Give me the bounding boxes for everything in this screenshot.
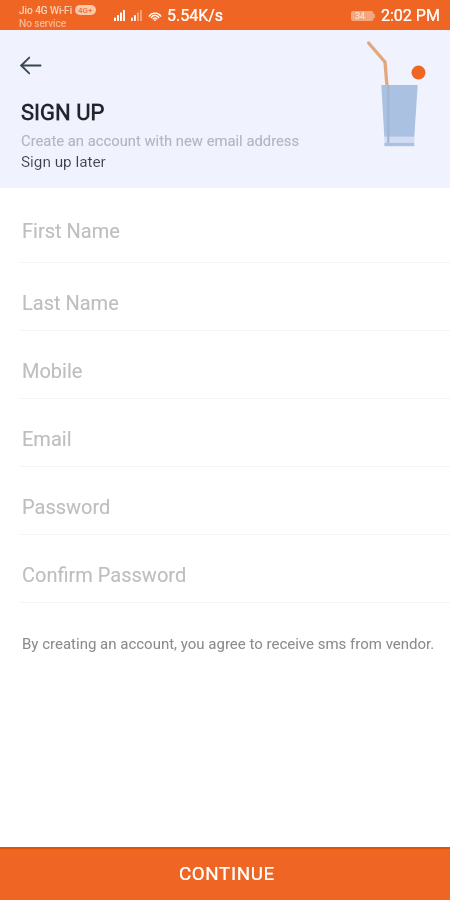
- button[interactable]: Confirm Password: [0, 535, 450, 603]
- staticText: Sign up later: [21, 153, 106, 171]
- staticText: 5.54K/s: [167, 6, 224, 25]
- staticText: Last Name: [22, 291, 119, 314]
- staticText: No service: [19, 18, 67, 30]
- button[interactable]: Back: [13, 48, 47, 82]
- button[interactable]: Email: [0, 399, 450, 467]
- staticText: SIGN UP: [21, 100, 105, 126]
- staticText: CONTINUE: [179, 863, 275, 885]
- staticText: 2:02 PM: [381, 6, 440, 25]
- staticText: 34: [355, 11, 366, 21]
- staticText: Email: [22, 427, 72, 450]
- staticText: 4G+: [78, 6, 93, 15]
- button[interactable]: Mobile: [0, 331, 450, 399]
- button[interactable]: Last Name: [0, 263, 450, 331]
- button[interactable]: First Name: [0, 188, 450, 263]
- staticText: Password: [22, 495, 111, 518]
- staticText: Confirm Password: [22, 563, 187, 586]
- staticText: Mobile: [22, 359, 83, 382]
- staticText: First Name: [22, 219, 120, 242]
- button[interactable]: Sign up later: [21, 153, 106, 171]
- button[interactable]: Password: [0, 467, 450, 535]
- staticText: Jio 4G Wi-Fi: [19, 5, 73, 17]
- staticText: Create an account with new email address: [21, 132, 300, 149]
- staticText: By creating an account, you agree to rec…: [22, 635, 435, 653]
- button[interactable]: CONTINUE: [0, 847, 450, 900]
